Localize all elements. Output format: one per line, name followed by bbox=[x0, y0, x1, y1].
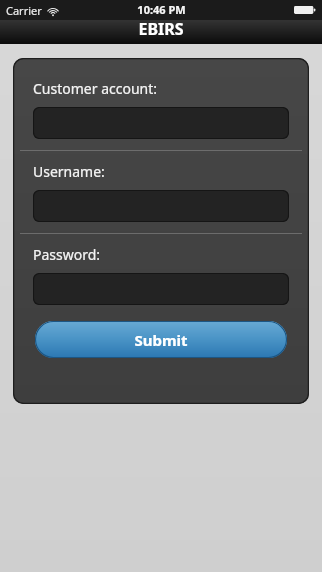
staticText: EBIRS bbox=[138, 18, 184, 40]
button[interactable]: Submit bbox=[35, 321, 287, 358]
button[interactable] bbox=[33, 273, 289, 305]
staticText: Carrier bbox=[6, 3, 42, 18]
staticText: Username: bbox=[33, 162, 105, 181]
staticText: Submit bbox=[134, 330, 188, 350]
staticText: Customer account: bbox=[33, 79, 158, 98]
button[interactable] bbox=[33, 107, 289, 139]
staticText: 10:46 PM bbox=[137, 2, 186, 17]
staticText: Password: bbox=[33, 245, 101, 264]
button[interactable] bbox=[33, 190, 289, 222]
